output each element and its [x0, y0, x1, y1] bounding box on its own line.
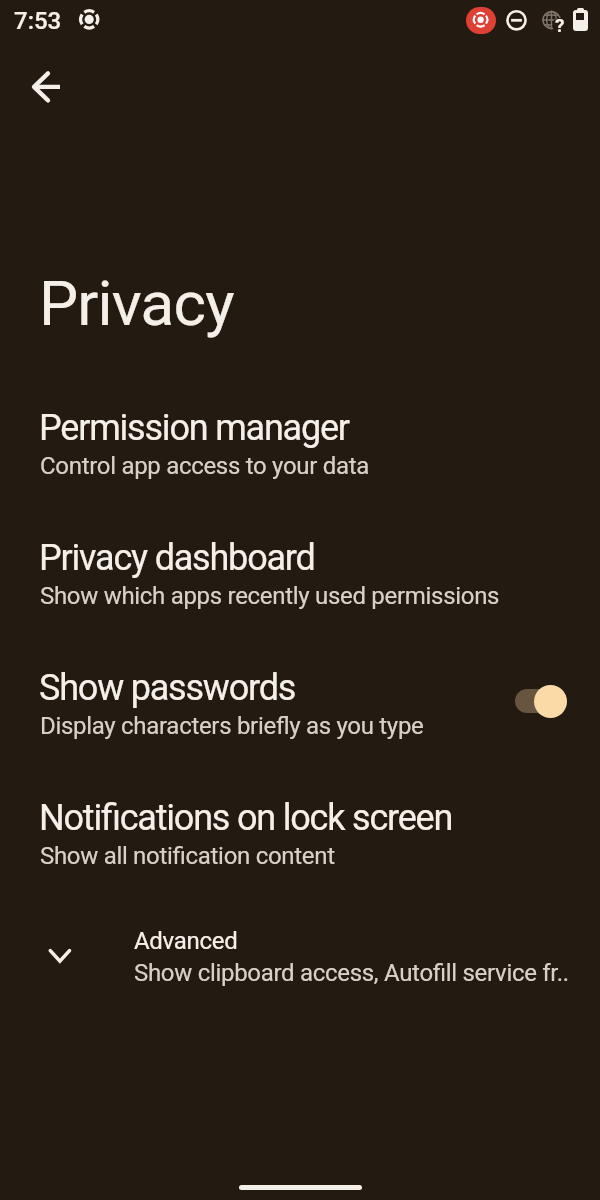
staticText: Privacy: [39, 267, 234, 340]
button[interactable]: Show passwords: [0, 641, 600, 753]
staticText: Show clipboard access, Autofill service …: [134, 959, 569, 987]
button[interactable]: Show passwords toggle, on: [509, 679, 573, 723]
button[interactable]: Advanced: [0, 908, 600, 1000]
staticText: Advanced: [134, 927, 238, 955]
button[interactable]: Privacy dashboard: [0, 511, 600, 623]
staticText: Permission manager: [39, 407, 349, 449]
staticText: Notifications on lock screen: [39, 797, 453, 839]
button[interactable]: Notifications on lock screen: [0, 771, 600, 883]
button[interactable]: Back: [22, 62, 72, 112]
staticText: Control app access to your data: [40, 452, 370, 480]
staticText: Show passwords: [39, 667, 296, 709]
staticText: Display characters briefly as you type: [40, 712, 424, 740]
staticText: Show all notification content: [40, 842, 335, 870]
staticText: Show which apps recently used permission…: [40, 582, 500, 610]
staticText: 7:53: [14, 7, 62, 35]
button[interactable]: Permission manager: [0, 381, 600, 493]
staticText: ?: [555, 14, 565, 36]
staticText: Privacy dashboard: [39, 537, 315, 579]
